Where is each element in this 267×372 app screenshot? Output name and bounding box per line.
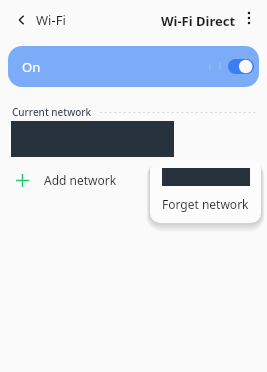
staticText: Forget network xyxy=(162,196,249,212)
button[interactable]: Wi-Fi Direct xyxy=(159,10,238,32)
button[interactable]: Back xyxy=(10,8,34,32)
staticText: Wi-Fi xyxy=(36,11,66,29)
button[interactable]: Add network xyxy=(0,165,267,195)
button[interactable]: More options xyxy=(238,7,260,29)
button[interactable]: Forget network xyxy=(150,192,261,216)
staticText: On xyxy=(22,58,41,76)
staticText: Current network xyxy=(12,105,92,119)
button[interactable]: Wi-Fi on xyxy=(228,58,254,75)
button[interactable]: On xyxy=(8,46,259,87)
staticText: Wi-Fi Direct xyxy=(161,12,236,30)
staticText: Add network xyxy=(44,172,117,188)
